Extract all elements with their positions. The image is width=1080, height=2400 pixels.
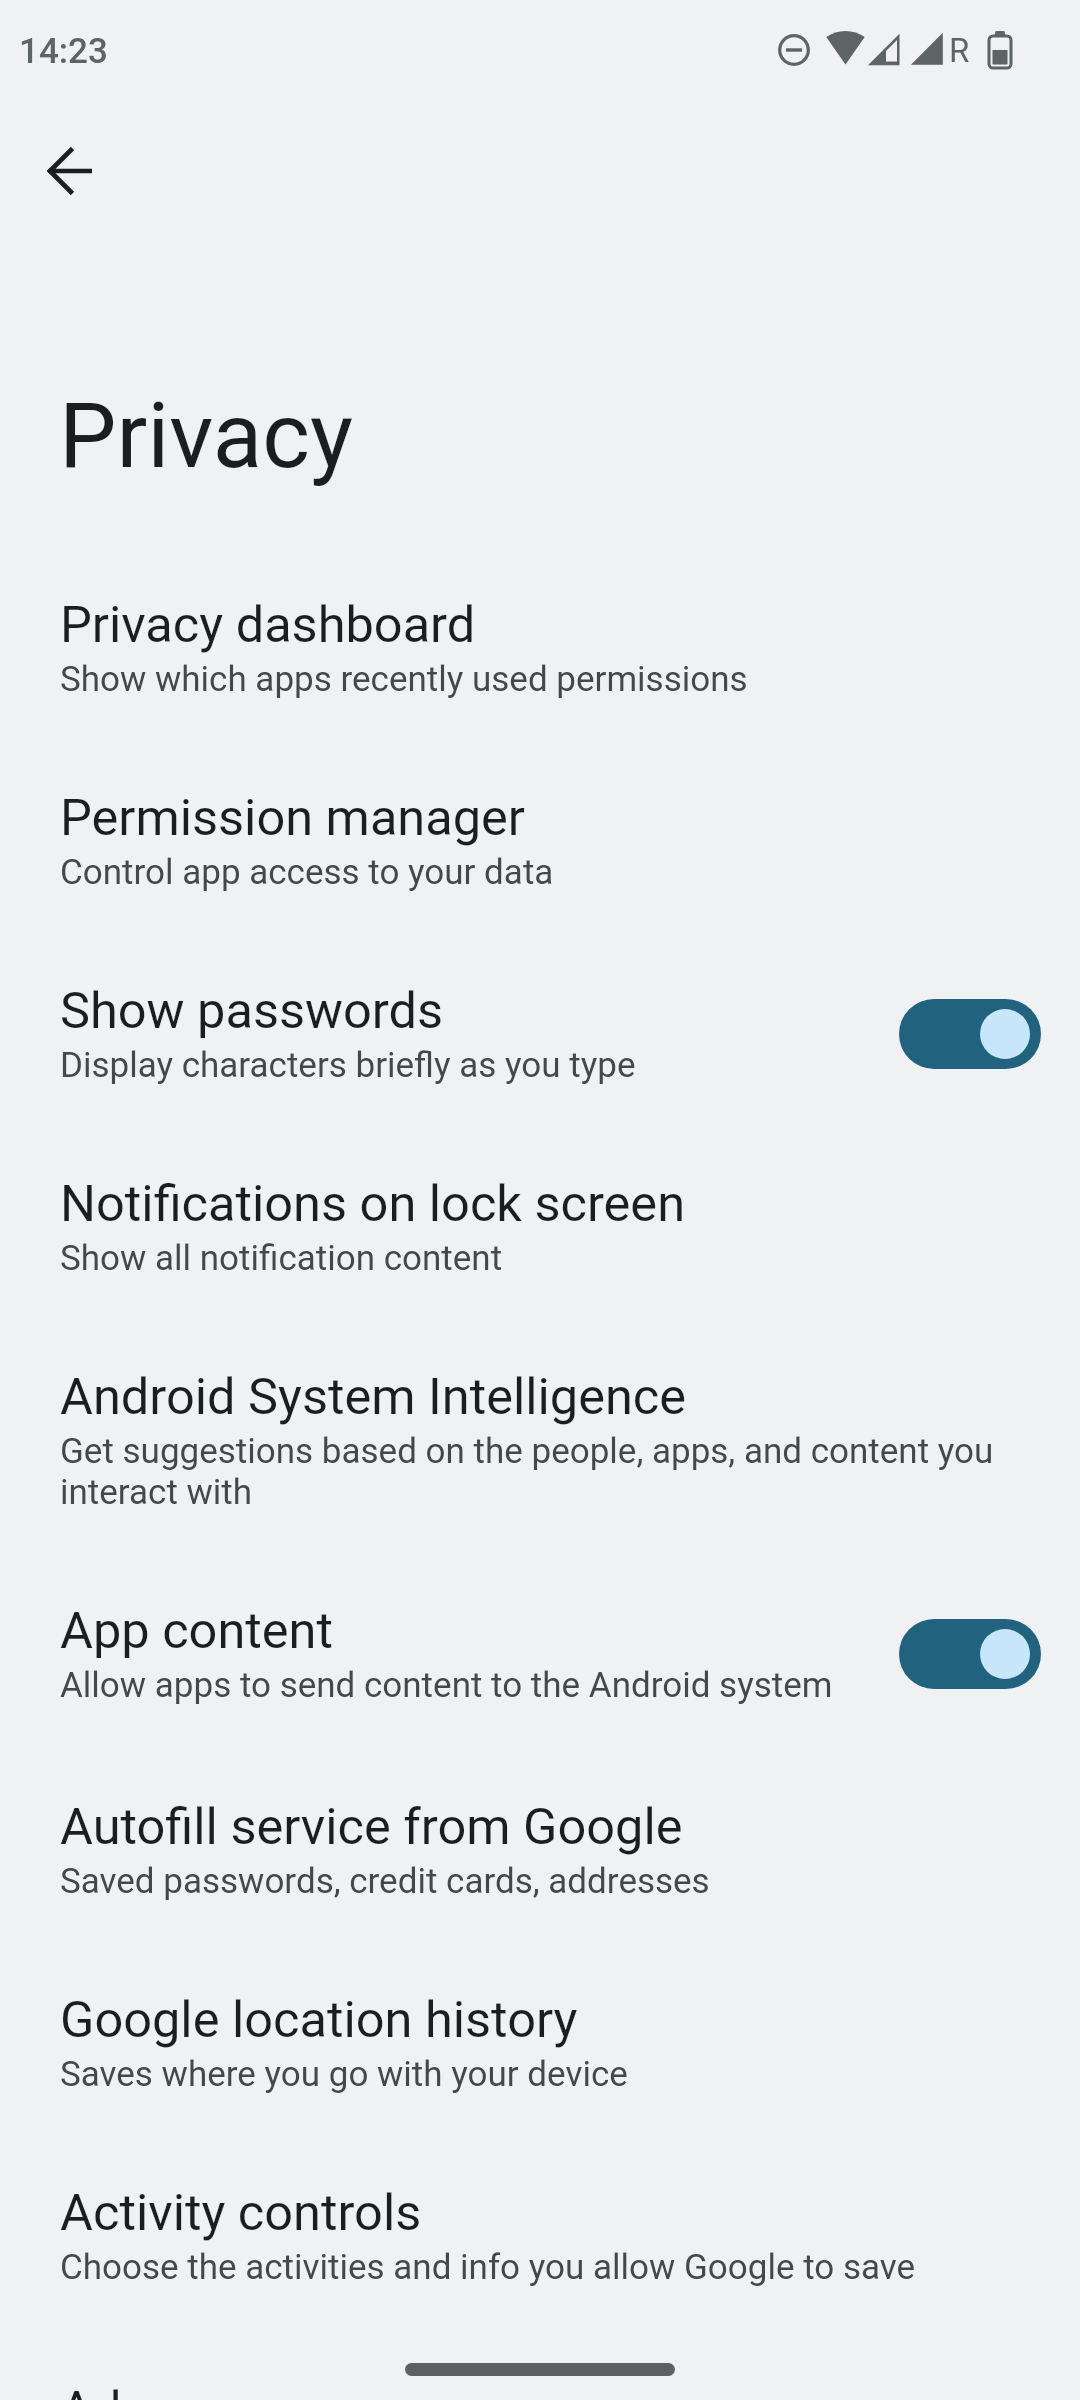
staticText: Show all notification content bbox=[60, 1238, 503, 1279]
staticText: Show which apps recently used permission… bbox=[60, 659, 748, 700]
staticText: Google location history bbox=[60, 1990, 578, 2049]
staticText: Show passwords bbox=[60, 981, 443, 1040]
staticText: Android System Intelligence bbox=[60, 1367, 687, 1426]
button[interactable]: Show passwords bbox=[0, 937, 1080, 1130]
staticText: Get suggestions based on the people, app… bbox=[60, 1431, 1020, 1513]
staticText: Saved passwords, credit cards, addresses bbox=[60, 1861, 710, 1902]
button[interactable]: Privacy dashboard bbox=[0, 551, 1080, 744]
button[interactable]: Notifications on lock screen bbox=[0, 1130, 1080, 1323]
staticText: Autofill service from Google bbox=[60, 1797, 683, 1856]
button[interactable] bbox=[899, 1619, 1041, 1689]
button[interactable]: Activity controls bbox=[0, 2139, 1080, 2332]
button[interactable]: Autofill service from Google bbox=[0, 1753, 1080, 1946]
staticText: Privacy bbox=[59, 383, 353, 490]
button[interactable]: Ads bbox=[0, 2336, 1080, 2400]
staticText: Control app access to your data bbox=[60, 852, 554, 893]
staticText: App content bbox=[60, 1601, 334, 1660]
button[interactable] bbox=[23, 123, 119, 219]
staticText: Ads bbox=[60, 2380, 148, 2400]
staticText: Privacy dashboard bbox=[60, 595, 476, 654]
staticText: Saves where you go with your device bbox=[60, 2054, 628, 2095]
staticText: Choose the activities and info you allow… bbox=[60, 2247, 916, 2288]
button[interactable]: App content bbox=[0, 1557, 1080, 1750]
staticText: R bbox=[949, 31, 970, 70]
staticText: Permission manager bbox=[60, 788, 525, 847]
button[interactable]: Permission manager bbox=[0, 744, 1080, 937]
button[interactable] bbox=[405, 2363, 675, 2376]
staticText: 14:23 bbox=[19, 31, 108, 72]
staticText: Notifications on lock screen bbox=[60, 1174, 686, 1233]
staticText: Allow apps to send content to the Androi… bbox=[60, 1665, 833, 1706]
staticText: Activity controls bbox=[60, 2183, 422, 2242]
button[interactable]: Google location history bbox=[0, 1946, 1080, 2139]
staticText: Display characters briefly as you type bbox=[60, 1045, 636, 1086]
button[interactable]: Android System Intelligence bbox=[0, 1323, 1080, 1557]
button[interactable] bbox=[899, 999, 1041, 1069]
